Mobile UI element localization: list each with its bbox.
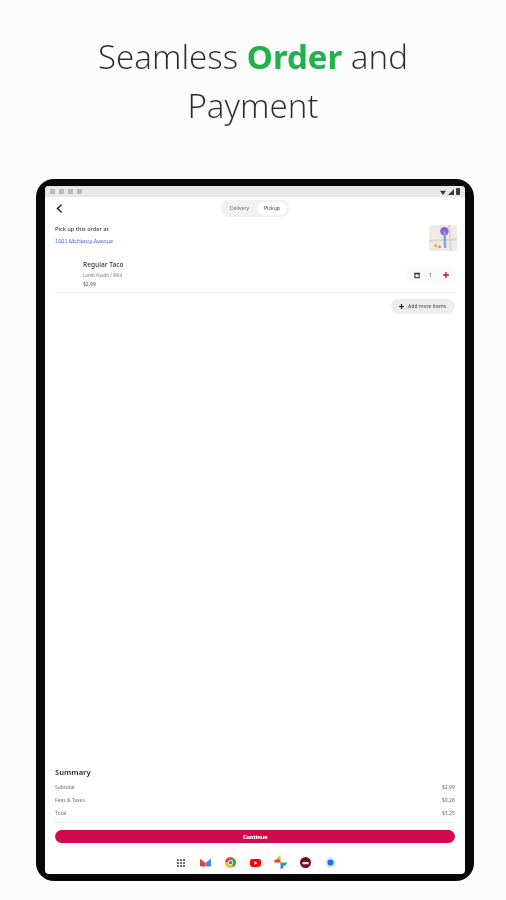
button[interactable]: YouTube: [249, 856, 262, 869]
button[interactable]: Continue: [55, 830, 455, 843]
staticText: Fees & Taxes: [55, 797, 85, 804]
button[interactable]: Back: [51, 200, 67, 216]
button[interactable]: Add: [442, 271, 449, 278]
staticText: Pick up this order at: [55, 225, 109, 232]
staticText: Summary: [55, 767, 91, 777]
staticText: Continue: [243, 833, 268, 840]
staticText: 1: [429, 271, 433, 278]
staticText: Pickup: [264, 205, 280, 212]
button[interactable]: Photos: [274, 856, 287, 869]
staticText: $2.99: [442, 784, 455, 791]
button[interactable]: Remove: [413, 271, 420, 278]
button[interactable]: Map: [429, 225, 457, 251]
button[interactable]: Chrome: [224, 856, 237, 869]
button[interactable]: Assistant: [324, 856, 337, 869]
button[interactable]: Gmail: [199, 856, 212, 869]
staticText: Subtotal: [55, 784, 75, 791]
staticText: Total: [55, 810, 67, 817]
staticText: Delivery: [230, 205, 250, 212]
button[interactable]: All apps: [174, 856, 187, 869]
button[interactable]: Pickup: [257, 202, 287, 215]
staticText: 1001 McHenry Avenue: [55, 237, 114, 244]
staticText: Lamb Asado / Mild: [83, 272, 123, 278]
button[interactable]: Add more items: [391, 299, 455, 314]
staticText: Regular Taco: [83, 260, 124, 269]
staticText: $3.25: [442, 810, 455, 817]
button[interactable]: App: [299, 856, 312, 869]
staticText: $2.99: [83, 281, 96, 288]
staticText: Seamless Order and: [98, 34, 408, 79]
staticText: $0.26: [442, 797, 455, 804]
button[interactable]: 1001 McHenry Avenue: [55, 237, 114, 244]
button[interactable]: Regular Taco: [83, 260, 457, 288]
staticText: Payment: [187, 83, 319, 128]
button[interactable]: Delivery: [223, 202, 257, 215]
staticText: Add more items: [408, 303, 447, 310]
